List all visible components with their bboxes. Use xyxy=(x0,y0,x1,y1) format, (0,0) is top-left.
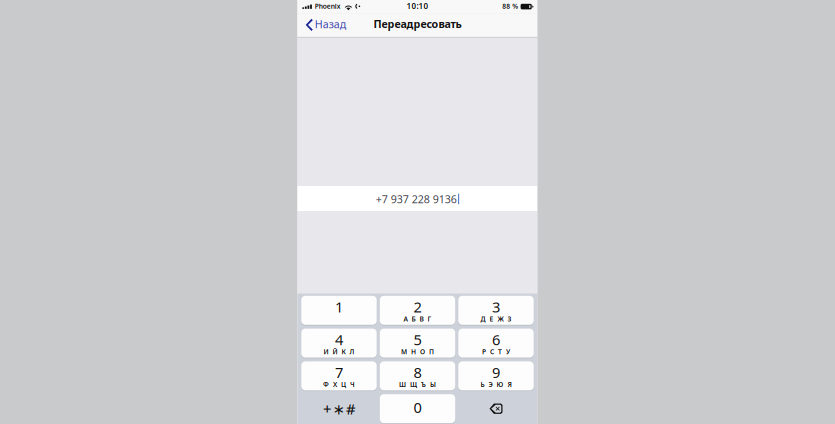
staticText: 0 xyxy=(413,397,421,417)
staticText: МНОП xyxy=(401,347,434,356)
button[interactable]: 2 xyxy=(380,296,455,325)
staticText: Назад xyxy=(315,17,346,31)
staticText: 8 xyxy=(413,363,421,382)
staticText: +7 937 228 9136 xyxy=(376,192,457,206)
button[interactable]: 5 xyxy=(380,329,455,358)
staticText: ИЙКЛ xyxy=(323,347,354,356)
staticText: ЬЭЮЯ xyxy=(480,380,511,389)
button[interactable]: 4 xyxy=(301,329,377,358)
staticText: +∗# xyxy=(323,399,355,418)
staticText: Переадресовать xyxy=(373,17,461,31)
staticText: 88 % xyxy=(502,2,518,11)
staticText: 3 xyxy=(492,297,500,317)
staticText: 10:10 xyxy=(406,1,428,11)
staticText: АБВГ xyxy=(403,314,431,323)
button[interactable]: 1 xyxy=(301,296,377,325)
staticText: 7 xyxy=(335,363,343,382)
button[interactable]: Назад xyxy=(297,13,352,37)
staticText: ФХЦЧ xyxy=(323,380,355,389)
button[interactable]: Plus, star, hash xyxy=(301,394,377,423)
button[interactable]: 8 xyxy=(380,361,455,390)
staticText: 2 xyxy=(413,297,421,317)
button[interactable]: 3 xyxy=(458,296,534,325)
staticText: РСТУ xyxy=(482,347,510,356)
button[interactable]: Delete xyxy=(458,394,534,423)
button[interactable]: 9 xyxy=(458,361,534,390)
button[interactable]: 7 xyxy=(301,361,377,390)
staticText: ДЕЖЗ xyxy=(480,314,511,323)
button[interactable]: 6 xyxy=(458,329,534,358)
staticText: 5 xyxy=(413,330,421,349)
staticText: 6 xyxy=(492,330,500,349)
staticText: 1 xyxy=(335,297,343,317)
staticText: 9 xyxy=(492,363,500,382)
staticText: Phoenix xyxy=(315,2,341,11)
staticText: ШЩЪЫ xyxy=(399,380,436,389)
staticText: 4 xyxy=(335,330,343,349)
button[interactable]: 0 xyxy=(380,394,455,423)
